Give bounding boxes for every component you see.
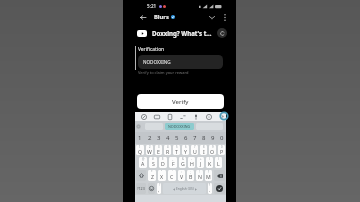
staticText: L: [217, 160, 220, 167]
staticText: .: [209, 187, 211, 193]
staticText: 2: [149, 145, 151, 149]
staticText: ,: [158, 187, 160, 193]
button[interactable]: 7: [190, 132, 199, 144]
button[interactable]: -: [188, 157, 195, 168]
staticText: T: [175, 148, 178, 155]
button[interactable]: Backspace: [214, 170, 225, 181]
button[interactable]: 4: [163, 132, 172, 144]
staticText: Verification: [138, 46, 165, 53]
staticText: Verify: [172, 98, 189, 106]
staticText: 7: [194, 145, 196, 149]
staticText: 0: [221, 145, 223, 149]
staticText: NODOXXING: [168, 124, 191, 129]
button[interactable]: 3: [154, 132, 163, 144]
button[interactable]: 6: [182, 145, 189, 155]
staticText: Q: [138, 148, 143, 155]
button[interactable]: *: [148, 170, 156, 181]
button[interactable]: ': [168, 170, 176, 181]
staticText: 1: [138, 134, 142, 142]
button[interactable]: ?: [205, 170, 212, 181]
button[interactable]: 3: [155, 145, 162, 155]
staticText: :: [181, 170, 182, 174]
staticText: P: [220, 148, 224, 155]
staticText: 9: [212, 145, 214, 149]
button[interactable]: Keyboard tool: [150, 112, 163, 121]
staticText: U: [193, 148, 197, 155]
staticText: 0: [220, 134, 224, 142]
button[interactable]: Period: [208, 183, 212, 194]
button[interactable]: ;: [187, 170, 194, 181]
button[interactable]: Enter: [214, 183, 225, 194]
button[interactable]: +: [197, 157, 204, 168]
button[interactable]: ?123: [136, 183, 146, 194]
button[interactable]: 6: [181, 132, 190, 144]
button[interactable]: 4: [164, 145, 171, 155]
button[interactable]: Clipboard suggestion: [136, 124, 141, 129]
button[interactable]: Doxxing? What's t...: [123, 26, 236, 40]
staticText: ": [161, 170, 163, 174]
button[interactable]: Keyboard tool: [189, 112, 202, 121]
button[interactable]: More keyboard tools: [218, 112, 226, 121]
button[interactable]: 2: [145, 132, 154, 144]
button[interactable]: #: [149, 157, 157, 168]
staticText: 2: [148, 134, 152, 142]
staticText: J: [200, 160, 202, 167]
button[interactable]: Keyboard tool: [176, 112, 189, 121]
staticText: 7: [193, 134, 197, 142]
button[interactable]: Shift: [136, 170, 146, 181]
button[interactable]: !: [196, 170, 203, 181]
button[interactable]: 2: [146, 145, 153, 155]
button[interactable]: More options: [219, 12, 230, 23]
staticText: +: [200, 157, 202, 161]
staticText: F: [172, 160, 175, 167]
button[interactable]: &: [179, 157, 186, 168]
staticText: Z: [151, 173, 154, 180]
staticText: K: [208, 160, 212, 167]
staticText: H: [190, 160, 194, 167]
button[interactable]: 0: [217, 132, 226, 144]
button[interactable]: Keyboard tool: [202, 112, 215, 121]
button[interactable]: 5: [172, 132, 181, 144]
staticText: *: [151, 170, 153, 174]
button[interactable]: Emoji: [148, 183, 155, 194]
button[interactable]: (: [206, 157, 213, 168]
button[interactable]: ": [158, 170, 166, 181]
button[interactable]: 1: [136, 145, 144, 155]
button[interactable]: Expand: [206, 12, 217, 23]
button[interactable]: Refresh: [217, 28, 227, 38]
button[interactable]: Back: [137, 12, 148, 23]
button[interactable]: @: [139, 157, 147, 168]
staticText: 4: [167, 145, 169, 149]
staticText: 6: [185, 145, 187, 149]
button[interactable]: Verify: [137, 94, 224, 109]
button[interactable]: 8: [199, 132, 208, 144]
staticText: S: [152, 160, 155, 167]
button[interactable]: _: [169, 157, 177, 168]
staticText: !: [199, 170, 200, 174]
staticText: -: [191, 157, 192, 161]
staticText: &: [182, 157, 184, 161]
button[interactable]: 1: [135, 132, 145, 144]
button[interactable]: $: [159, 157, 167, 168]
button[interactable]: NODOXXING: [165, 123, 194, 130]
button[interactable]: 8: [200, 145, 207, 155]
button[interactable]: English (US): [163, 183, 206, 194]
button[interactable]: 9: [209, 145, 216, 155]
button[interactable]: Comma: [157, 183, 161, 194]
button[interactable]: NODOXXING: [138, 55, 223, 69]
button[interactable]: 9: [208, 132, 217, 144]
button[interactable]: 5: [173, 145, 180, 155]
button[interactable]: Keyboard tool: [137, 112, 150, 121]
staticText: NODOXXING: [143, 59, 171, 65]
button[interactable]: 7: [191, 145, 198, 155]
staticText: X: [160, 173, 164, 180]
button[interactable]: Keyboard tool: [163, 112, 176, 121]
button[interactable]: :: [178, 170, 185, 181]
staticText: 3: [157, 134, 161, 142]
button[interactable]: 0: [218, 145, 225, 155]
staticText: 8: [203, 145, 205, 149]
button[interactable]: ): [215, 157, 222, 168]
staticText: W: [147, 148, 152, 155]
